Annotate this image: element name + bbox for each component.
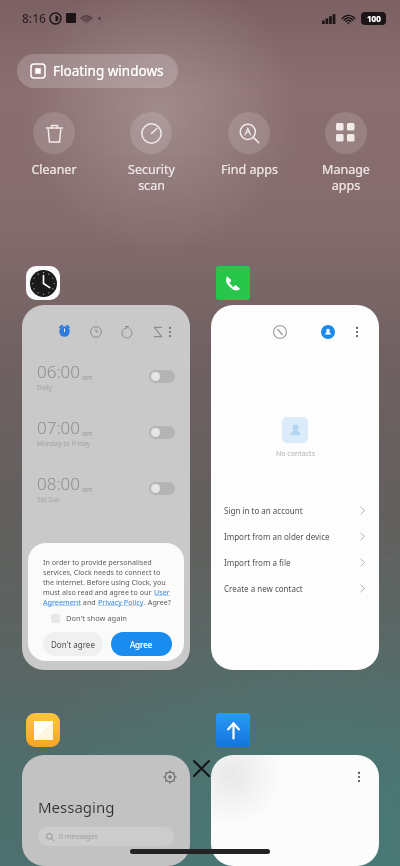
staticText: In order to provide personalised [43,557,152,567]
button[interactable]: Find apps [206,112,292,178]
button[interactable]: Alarm toggle [149,370,175,383]
staticText: the internet. Before using Clock, you [43,577,166,587]
staticText: Privacy Policy [98,597,144,607]
button[interactable]: Clock [26,266,60,300]
button[interactable] [211,755,379,866]
staticText: 06:00 [37,360,80,383]
staticText: services, Clock needs to connect to [43,567,161,577]
staticText: am [82,373,93,383]
button[interactable]: Agree [111,632,172,656]
button[interactable]: Security scan [108,112,194,193]
staticText: Don't agree [51,639,95,650]
button[interactable]: Don't show again [43,613,127,623]
staticText: Import from an older device [224,531,330,542]
button[interactable]: Alarm toggle [149,426,175,439]
button[interactable]: 0 messages [38,827,174,846]
button[interactable]: Import from a file [211,549,379,575]
button[interactable]: System updater [216,713,250,747]
staticText: 08:00 [37,472,80,495]
button[interactable]: Messaging [26,713,60,747]
staticText: Monday to Friday [37,439,91,448]
staticText: Sign in to an account [224,505,303,516]
staticText: No contacts [276,449,315,459]
staticText: Import from a file [224,557,291,568]
staticText: Find apps [221,161,278,178]
staticText: Cleaner [31,161,77,178]
button[interactable]: Close [188,755,214,781]
staticText: Sat Sun [37,495,60,504]
button[interactable]: Floating windows [17,54,178,88]
button[interactable]: Sign in to an account [211,497,379,523]
button[interactable]: 06:00 [22,305,190,670]
staticText: 0 messages [59,832,98,842]
staticText: 8:16 [22,10,46,26]
staticText: am [82,485,93,495]
staticText: must also read and agree to our [43,587,154,597]
staticText: . Agree? [144,597,171,607]
staticText: Daily [37,383,53,392]
staticText: am [82,429,93,439]
staticText: Manage apps [322,161,370,193]
button[interactable]: Messaging [22,755,190,866]
button[interactable]: Alarm toggle [149,482,175,495]
button[interactable]: No contacts [211,305,379,670]
staticText: Agreement [43,597,81,607]
staticText: Agree [130,639,153,650]
button[interactable]: Create a new contact [211,575,379,601]
button[interactable]: Import from an older device [211,523,379,549]
staticText: 07:00 [37,416,80,439]
staticText: Security scan [128,161,175,193]
staticText: 100 [367,13,381,24]
staticText: Create a new contact [224,583,303,594]
button[interactable]: Cleaner [11,112,97,178]
staticText: and [81,597,98,607]
button[interactable]: Manage apps [303,112,389,193]
staticText: User [154,587,170,597]
button[interactable]: Don't agree [43,632,103,656]
staticText: Floating windows [53,62,164,80]
button[interactable]: Phone [216,266,250,300]
staticText: Messaging [38,797,115,817]
staticText: Don't show again [66,613,127,623]
